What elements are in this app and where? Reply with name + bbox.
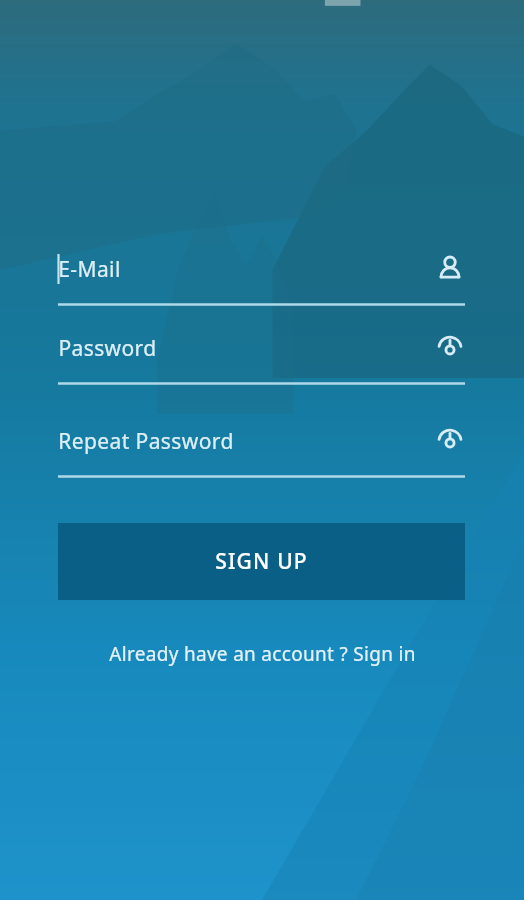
staticText: E-Mail bbox=[58, 255, 121, 284]
other: Password bbox=[435, 333, 465, 363]
other: Password bbox=[435, 426, 465, 456]
button[interactable]: Password bbox=[58, 325, 465, 385]
button[interactable]: Already have an account ? Sign in bbox=[0, 633, 524, 675]
button[interactable]: SIGN UP bbox=[58, 523, 465, 600]
staticText: SIGN UP bbox=[215, 547, 308, 576]
staticText: Repeat Password bbox=[58, 427, 234, 456]
other: Account bbox=[435, 254, 465, 284]
staticText: Password bbox=[58, 334, 157, 363]
button[interactable]: Repeat Password bbox=[58, 418, 465, 478]
button[interactable]: E-Mail bbox=[58, 246, 465, 306]
staticText: Already have an account ? Sign in bbox=[109, 641, 416, 667]
